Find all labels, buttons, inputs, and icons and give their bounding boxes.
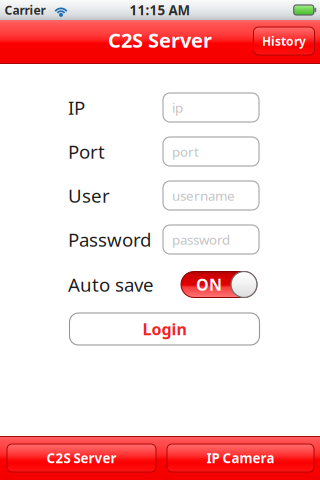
- staticText: Auto save: [68, 272, 154, 297]
- staticText: History: [262, 33, 306, 49]
- staticText: Carrier: [4, 2, 45, 18]
- button[interactable]: ip: [163, 93, 259, 122]
- staticText: IP: [68, 95, 85, 120]
- staticText: 11:15 AM: [129, 1, 190, 19]
- staticText: Login: [142, 318, 186, 340]
- button[interactable]: C2S Server: [7, 444, 156, 472]
- staticText: Password: [68, 227, 151, 252]
- staticText: IP Camera: [206, 449, 274, 467]
- staticText: Port: [68, 139, 105, 164]
- staticText: username: [172, 187, 235, 204]
- button[interactable]: History: [253, 27, 314, 55]
- staticText: C2S Server: [108, 27, 212, 53]
- staticText: ON: [196, 274, 222, 295]
- staticText: C2S Server: [46, 449, 116, 467]
- staticText: password: [172, 231, 230, 248]
- staticText: User: [68, 183, 110, 208]
- button[interactable]: Auto save, on: [181, 271, 257, 297]
- button[interactable]: username: [163, 181, 259, 210]
- staticText: port: [172, 143, 199, 160]
- button[interactable]: password: [163, 225, 259, 254]
- button[interactable]: Login: [69, 313, 259, 345]
- button[interactable]: port: [163, 137, 259, 166]
- button[interactable]: IP Camera: [167, 444, 314, 472]
- staticText: ip: [172, 99, 183, 116]
